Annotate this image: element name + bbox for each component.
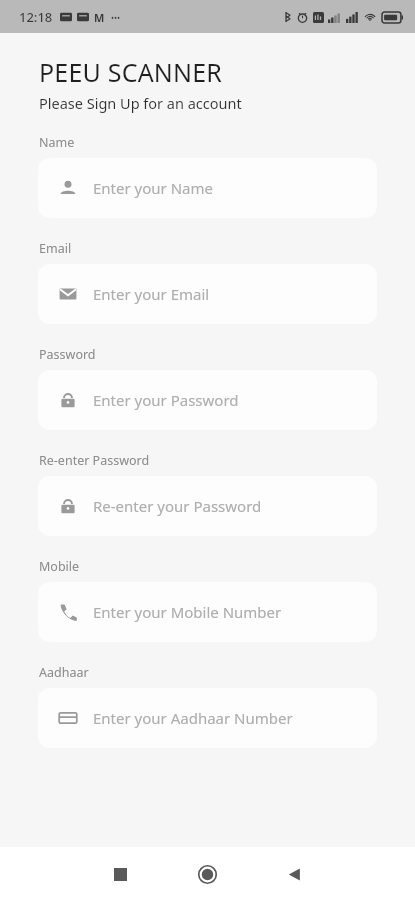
- staticText: Please Sign Up for an account: [39, 93, 242, 113]
- button[interactable]: Enter your Password: [38, 370, 377, 430]
- button[interactable]: Enter your Name: [38, 158, 377, 218]
- button[interactable]: Enter your Mobile Number: [38, 582, 377, 642]
- staticText: M: [94, 10, 105, 25]
- staticText: Re-enter Password: [39, 452, 150, 469]
- button[interactable]: Enter your Aadhaar Number: [38, 688, 377, 748]
- staticText: Aadhaar: [39, 664, 89, 681]
- staticText: Enter your Name: [93, 178, 213, 198]
- staticText: Enter your Password: [93, 390, 239, 410]
- button[interactable]: Recent apps: [97, 851, 143, 897]
- staticText: •••: [111, 12, 121, 23]
- button[interactable]: Enter your Email: [38, 264, 377, 324]
- staticText: Mobile: [39, 558, 80, 575]
- staticText: Email: [39, 240, 72, 257]
- staticText: PEEU SCANNER: [39, 55, 223, 89]
- staticText: Enter your Aadhaar Number: [93, 708, 293, 728]
- button[interactable]: Home: [184, 851, 230, 897]
- button[interactable]: Back: [271, 851, 317, 897]
- staticText: 12:18: [19, 8, 53, 26]
- staticText: Re-enter your Password: [93, 496, 262, 516]
- staticText: Name: [39, 134, 75, 151]
- button[interactable]: Re-enter your Password: [38, 476, 377, 536]
- staticText: Password: [39, 346, 96, 363]
- staticText: Enter your Email: [93, 284, 210, 304]
- staticText: Enter your Mobile Number: [93, 602, 282, 622]
